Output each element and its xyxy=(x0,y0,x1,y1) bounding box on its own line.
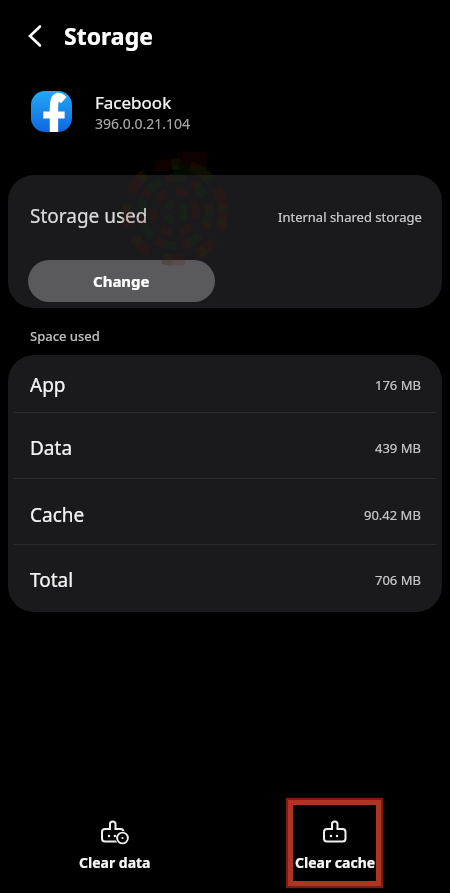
staticText: Space used xyxy=(30,327,100,345)
staticText: Storage used xyxy=(30,203,148,229)
staticText: Data xyxy=(30,435,73,461)
staticText: Internal shared storage xyxy=(278,208,422,226)
staticText: 706 MB xyxy=(375,571,421,589)
staticText: Storage xyxy=(64,20,153,51)
staticText: 176 MB xyxy=(375,376,421,394)
staticText: Clear cache xyxy=(295,853,376,872)
staticText: Cache xyxy=(30,502,85,528)
staticText: Facebook xyxy=(95,91,172,114)
button[interactable]: Clear cache xyxy=(275,816,395,872)
staticText: App xyxy=(30,372,66,398)
staticText: Total xyxy=(30,567,74,593)
staticText: 396.0.0.21.104 xyxy=(95,114,191,133)
staticText: 90.42 MB xyxy=(364,506,421,524)
staticText: Change xyxy=(93,271,150,291)
button[interactable]: Change xyxy=(28,260,215,302)
button[interactable]: Clear data xyxy=(55,816,175,872)
staticText: 439 MB xyxy=(375,439,421,457)
staticText: Clear data xyxy=(79,853,151,872)
